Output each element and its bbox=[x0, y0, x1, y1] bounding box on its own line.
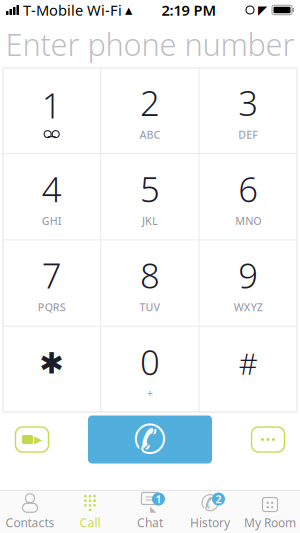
staticText: 8 bbox=[140, 252, 160, 298]
staticText: 2 bbox=[215, 492, 221, 506]
staticText: ABC bbox=[139, 128, 160, 142]
button[interactable]: 3 bbox=[200, 68, 297, 153]
button[interactable]: 1 bbox=[3, 68, 100, 153]
staticText: 5 bbox=[140, 166, 160, 212]
staticText: Call bbox=[79, 514, 100, 530]
staticText: Enter phone number bbox=[5, 24, 294, 64]
staticText: 1 bbox=[42, 82, 62, 128]
button[interactable]: 9 bbox=[200, 240, 297, 326]
button[interactable]: # bbox=[200, 327, 297, 412]
button[interactable]: My Room bbox=[240, 491, 300, 533]
button[interactable]: 8 bbox=[101, 240, 199, 326]
staticText: # bbox=[239, 344, 258, 383]
button[interactable]: Video call bbox=[2, 415, 62, 463]
staticText: WXYZ bbox=[234, 300, 263, 314]
staticText: 0 bbox=[140, 339, 160, 385]
staticText: ◤ bbox=[258, 3, 267, 17]
button[interactable]: More options bbox=[238, 415, 298, 463]
staticText: JKL bbox=[142, 214, 158, 228]
button[interactable]: Call bbox=[60, 491, 120, 533]
staticText: GHI bbox=[42, 214, 62, 228]
button[interactable]: ✆ bbox=[180, 491, 240, 533]
staticText: 2 bbox=[140, 79, 160, 125]
staticText: ✆ bbox=[133, 417, 167, 462]
staticText: T-Mobile Wi-Fi bbox=[23, 0, 122, 20]
staticText: My Room bbox=[244, 514, 296, 530]
staticText: ✆ bbox=[200, 490, 219, 516]
staticText: 6 bbox=[238, 166, 258, 212]
button[interactable]: 2 bbox=[101, 68, 199, 153]
staticText: 2:19 PM bbox=[161, 0, 216, 20]
staticText: 1 bbox=[155, 492, 161, 506]
button[interactable]: ✱ bbox=[3, 327, 100, 412]
staticText: 7 bbox=[42, 252, 62, 298]
staticText: ✱ bbox=[39, 347, 64, 380]
staticText: Contacts bbox=[5, 514, 54, 530]
button[interactable]: 5 bbox=[101, 154, 199, 239]
button[interactable]: ◣ bbox=[120, 491, 180, 533]
button[interactable]: Contacts bbox=[0, 491, 60, 533]
staticText: PQRS bbox=[38, 300, 66, 314]
staticText: DEF bbox=[238, 128, 258, 142]
button[interactable]: Call bbox=[88, 415, 212, 463]
staticText: 9 bbox=[238, 252, 258, 298]
button[interactable]: 4 bbox=[3, 154, 100, 239]
staticText: ▴ bbox=[125, 2, 132, 18]
staticText: Chat bbox=[137, 514, 163, 530]
staticText: ◣ bbox=[150, 504, 156, 514]
staticText: TUV bbox=[139, 300, 160, 314]
staticText: MNO bbox=[235, 214, 261, 228]
staticText: ▶ bbox=[34, 433, 42, 445]
button[interactable]: 7 bbox=[3, 240, 100, 326]
staticText: History bbox=[190, 514, 230, 530]
staticText: 3 bbox=[238, 79, 258, 125]
staticText: 4 bbox=[42, 166, 62, 212]
button[interactable]: 6 bbox=[200, 154, 297, 239]
button[interactable]: 0 bbox=[101, 327, 199, 412]
staticText: + bbox=[147, 386, 153, 400]
